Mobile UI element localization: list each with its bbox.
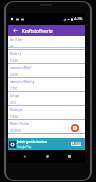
button[interactable]: Back xyxy=(18,150,30,162)
staticText: 9.345 xyxy=(10,59,18,63)
staticText: Google Play xyxy=(17,145,32,149)
button[interactable]: Berechnen xyxy=(71,124,79,132)
staticText: Kraftstoffverbr xyxy=(22,28,54,34)
button[interactable]: km/gal xyxy=(8,92,85,106)
staticText: 44 xyxy=(10,45,14,49)
button[interactable]: nautische Meile/ g xyxy=(8,78,85,92)
staticText: nautische Meile/ xyxy=(10,66,32,70)
button[interactable]: Jetzt gratis testen xyxy=(8,138,85,150)
staticText: 26.5 xyxy=(10,101,16,105)
button[interactable]: LADEN xyxy=(71,142,81,146)
button[interactable]: Meile / L xyxy=(8,50,85,64)
staticText: Meile/gal xyxy=(10,108,23,112)
staticText: Meile / L xyxy=(10,52,22,56)
staticText: km/gal xyxy=(10,94,20,98)
button[interactable]: Meter / Kraftst xyxy=(8,120,85,134)
button[interactable]: Home xyxy=(41,150,53,162)
staticText: 4.498 xyxy=(10,73,18,77)
staticText: 93.4560 xyxy=(10,129,22,133)
staticText: 4:36 xyxy=(74,16,83,22)
button[interactable]: Navigate up xyxy=(8,25,22,36)
staticText: LADEN xyxy=(72,142,81,146)
staticText: 7.791 xyxy=(10,87,18,91)
staticText: nautische Meile/ g xyxy=(10,80,35,84)
staticText: Meter / Kraftst xyxy=(10,122,30,126)
staticText: km / Liter xyxy=(10,38,23,42)
button[interactable]: km / Liter xyxy=(8,36,85,50)
staticText: Jetzt gratis testen xyxy=(17,139,48,144)
staticText: 7.844 xyxy=(10,115,18,119)
button[interactable]: Meile/gal xyxy=(8,106,85,120)
button[interactable]: nautische Meile/ xyxy=(8,64,85,78)
button[interactable]: Recent apps xyxy=(63,150,75,162)
